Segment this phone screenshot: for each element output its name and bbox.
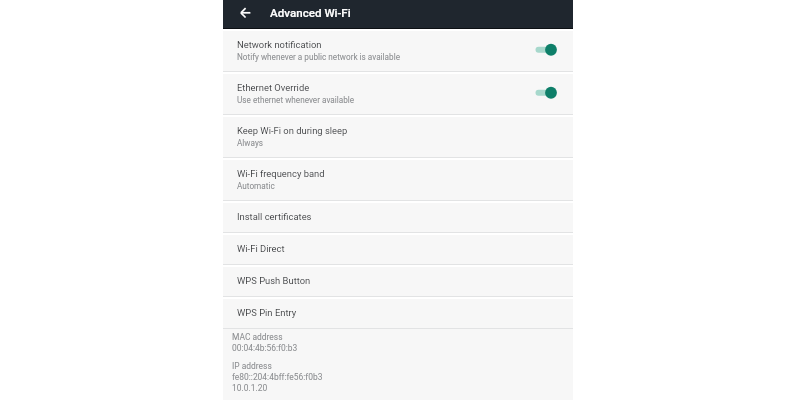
button[interactable]: WPS Pin Entry (223, 297, 573, 329)
staticText: Wi-Fi Direct (237, 243, 285, 254)
button[interactable]: Network notification (223, 29, 573, 72)
staticText: Ethernet Override (237, 82, 310, 93)
button[interactable]: Install certificates (223, 201, 573, 233)
button[interactable]: Keep Wi-Fi on during sleep (223, 115, 573, 158)
staticText: Use ethernet whenever available (237, 95, 355, 105)
button[interactable]: Ethernet Override (223, 72, 573, 115)
staticText: MAC address (232, 332, 283, 342)
staticText: 10.0.1.20 (232, 383, 268, 393)
button[interactable]: Wi-Fi frequency band (223, 158, 573, 201)
staticText: Always (237, 138, 263, 148)
button[interactable]: Toggle setting (529, 80, 567, 106)
staticText: Install certificates (237, 211, 312, 222)
staticText: Automatic (237, 181, 275, 191)
staticText: WPS Push Button (237, 275, 311, 286)
staticText: Notify whenever a public network is avai… (237, 52, 400, 62)
staticText: IP address (232, 361, 272, 371)
button[interactable]: WPS Push Button (223, 265, 573, 297)
staticText: 00:04:4b:56:f0:b3 (232, 343, 298, 353)
staticText: Advanced Wi-Fi (270, 6, 351, 20)
staticText: Network notification (237, 39, 322, 50)
staticText: Keep Wi-Fi on during sleep (237, 125, 348, 136)
button[interactable]: Toggle setting (529, 37, 567, 63)
button[interactable]: Navigate up (223, 0, 268, 29)
staticText: fe80::204:4bff:fe56:f0b3 (232, 372, 323, 382)
button[interactable]: Wi-Fi Direct (223, 233, 573, 265)
staticText: Wi-Fi frequency band (237, 168, 325, 179)
staticText: WPS Pin Entry (237, 307, 297, 318)
